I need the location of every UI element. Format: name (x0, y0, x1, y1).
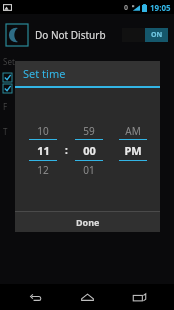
staticText: T (3, 126, 8, 137)
staticText: F (3, 101, 8, 112)
staticText: PM (124, 143, 142, 158)
staticText: Do Not Disturb (35, 28, 106, 42)
staticText: Set (3, 56, 15, 67)
staticText: 59 (83, 124, 95, 138)
staticText: Done (76, 216, 100, 228)
staticText: Set time (23, 66, 66, 81)
button[interactable]: Back (18, 284, 52, 310)
staticText: ON (151, 30, 163, 40)
button[interactable]: AM (116, 122, 150, 178)
staticText: 01 (83, 163, 95, 177)
button[interactable]: Do Not Disturb (0, 18, 174, 52)
button[interactable]: Home (70, 284, 104, 310)
button[interactable]: Recents (122, 284, 156, 310)
button[interactable]: 59 (72, 122, 106, 178)
staticText: 19:05 (150, 2, 171, 13)
button[interactable]: Do Not Disturb toggle (122, 28, 168, 42)
staticText: 0 (124, 3, 129, 13)
button[interactable]: 10 (26, 122, 60, 178)
staticText: : (65, 143, 68, 157)
staticText: 00 (83, 143, 96, 158)
staticText: 12 (37, 163, 49, 177)
staticText: 11 (37, 143, 50, 158)
button[interactable]: Done (15, 212, 160, 232)
staticText: AM (125, 124, 141, 138)
staticText: 10 (37, 124, 49, 138)
